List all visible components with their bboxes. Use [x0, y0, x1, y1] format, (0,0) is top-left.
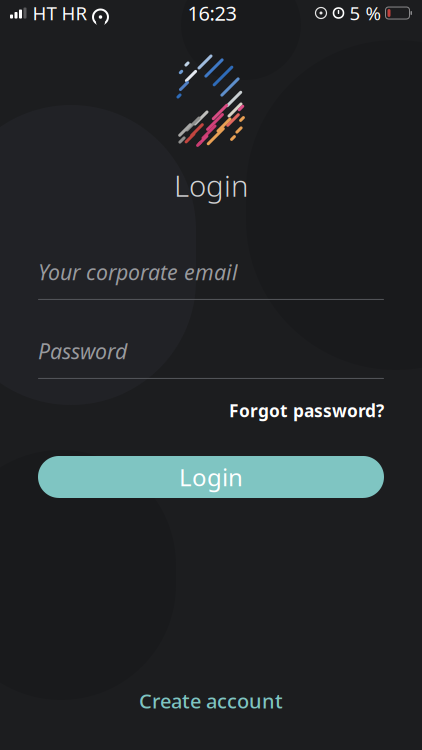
staticText: Login [174, 166, 248, 205]
staticText: 16:23 [187, 0, 236, 26]
staticText: Forgot password? [229, 399, 384, 422]
button[interactable]: Create account [119, 677, 303, 724]
button[interactable]: Login [38, 456, 384, 498]
staticText: HT HR [32, 1, 87, 25]
staticText: Create account [139, 687, 283, 714]
staticText: Password [38, 337, 127, 365]
button[interactable]: Forgot password? [229, 393, 384, 428]
staticText: 5 % [349, 1, 381, 25]
staticText: Your corporate email [38, 258, 238, 286]
staticText: Login [179, 461, 243, 493]
